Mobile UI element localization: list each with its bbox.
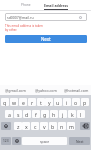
button[interactable]: o	[72, 98, 80, 106]
button[interactable]: q	[1, 98, 9, 106]
button[interactable]: d	[23, 110, 31, 118]
button[interactable]: m	[67, 122, 75, 130]
staticText: p	[83, 99, 87, 106]
staticText: j	[62, 111, 64, 118]
staticText: q	[3, 99, 7, 106]
button[interactable]: Shift	[1, 122, 11, 130]
staticText: 123	[3, 139, 9, 143]
staticText: z	[17, 123, 20, 130]
staticText: sd0007@mail.ru	[7, 15, 34, 20]
staticText: g	[43, 111, 47, 118]
staticText: h	[52, 111, 56, 118]
button[interactable]: Phone	[21, 0, 31, 10]
staticText: v	[43, 123, 46, 130]
button[interactable]: h	[50, 110, 58, 118]
staticText: f	[35, 111, 37, 118]
staticText: s	[17, 111, 20, 118]
staticText: l	[80, 111, 82, 118]
button[interactable]: Backspace	[80, 122, 90, 130]
other: Clear text	[79, 16, 82, 19]
staticText: r	[31, 99, 34, 106]
staticText: Next	[41, 36, 51, 42]
staticText: k	[71, 111, 74, 118]
button[interactable]: j	[59, 110, 67, 118]
staticText: w	[12, 99, 17, 106]
button[interactable]: t	[37, 98, 45, 106]
staticText: b	[51, 123, 55, 130]
button[interactable]: c	[31, 122, 39, 130]
button[interactable]: sd0007@mail.ru	[5, 13, 87, 21]
staticText: c	[34, 123, 37, 130]
staticText: i	[66, 99, 68, 106]
button[interactable]: z	[14, 122, 22, 130]
button[interactable]: i	[63, 98, 71, 106]
staticText: t	[40, 99, 42, 106]
button[interactable]: n	[58, 122, 66, 130]
staticText: a	[8, 111, 11, 118]
button[interactable]: p	[81, 98, 89, 106]
staticText: @hotmail.com	[64, 88, 89, 93]
button[interactable]: Next	[69, 137, 90, 145]
staticText: This email address is taken by other.	[5, 24, 43, 31]
button[interactable]: w	[10, 98, 18, 106]
button[interactable]: v	[40, 122, 48, 130]
button[interactable]: u	[54, 98, 62, 106]
staticText: @yahoo.com	[35, 88, 57, 93]
button[interactable]: @hotmail.com	[61, 85, 91, 95]
button[interactable]: f	[32, 110, 40, 118]
button[interactable]: space	[22, 137, 67, 145]
button[interactable]: Email address	[44, 0, 69, 10]
staticText: space	[40, 139, 50, 144]
button[interactable]: g	[41, 110, 49, 118]
staticText: u	[56, 99, 60, 106]
button[interactable]: Next	[5, 35, 87, 43]
button[interactable]: y	[45, 98, 53, 106]
staticText: y	[48, 99, 51, 106]
staticText: @gmail.com	[5, 88, 26, 93]
staticText: d	[25, 111, 29, 118]
button[interactable]: @yahoo.com	[31, 85, 61, 95]
button[interactable]: Emoji keyboard	[12, 137, 21, 145]
button[interactable]: l	[77, 110, 85, 118]
button[interactable]: s	[14, 110, 22, 118]
staticText: m	[69, 123, 74, 130]
staticText: o	[74, 99, 78, 106]
button[interactable]: r	[28, 98, 36, 106]
staticText: Next	[76, 139, 84, 144]
button[interactable]: k	[68, 110, 76, 118]
button[interactable]: e	[19, 98, 27, 106]
staticText: Email address	[44, 3, 69, 8]
button[interactable]: @gmail.com	[0, 85, 31, 95]
button[interactable]: x	[22, 122, 30, 130]
button[interactable]: b	[49, 122, 57, 130]
staticText: n	[60, 123, 64, 130]
staticText: Phone	[21, 3, 31, 7]
staticText: e	[22, 99, 25, 106]
button[interactable]: Numbers	[1, 137, 11, 145]
button[interactable]: a	[5, 110, 13, 118]
staticText: x	[25, 123, 28, 130]
